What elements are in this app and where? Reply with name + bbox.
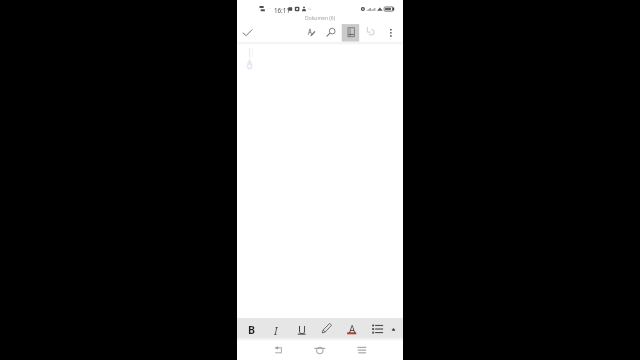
button[interactable]: Bold: [240, 318, 264, 337]
button[interactable]: Underline: [290, 318, 314, 337]
button[interactable]: Italic: [265, 318, 289, 337]
button[interactable]: Done: [238, 23, 257, 42]
staticText: A: [349, 322, 356, 335]
button[interactable]: Highlight: [315, 318, 339, 337]
button[interactable]: Undo: [361, 23, 380, 42]
button[interactable]: Font colour: [341, 318, 365, 337]
staticText: U: [298, 322, 307, 336]
button[interactable]: Ink annotation: [303, 23, 322, 42]
button[interactable]: Back: [264, 339, 292, 360]
button[interactable]: More options: [381, 23, 400, 42]
button[interactable]: Page view: [342, 24, 359, 42]
button[interactable]: Recents: [348, 339, 376, 360]
staticText: I: [274, 323, 278, 337]
staticText: 16:11: [274, 6, 290, 14]
button[interactable]: Search: [323, 23, 342, 42]
staticText: B: [248, 323, 256, 337]
button[interactable]: Bulleted list: [366, 318, 390, 337]
button[interactable]: Home: [306, 339, 334, 360]
button[interactable]: More formatting: [387, 318, 402, 337]
staticText: Dokumen (6): [305, 15, 336, 22]
